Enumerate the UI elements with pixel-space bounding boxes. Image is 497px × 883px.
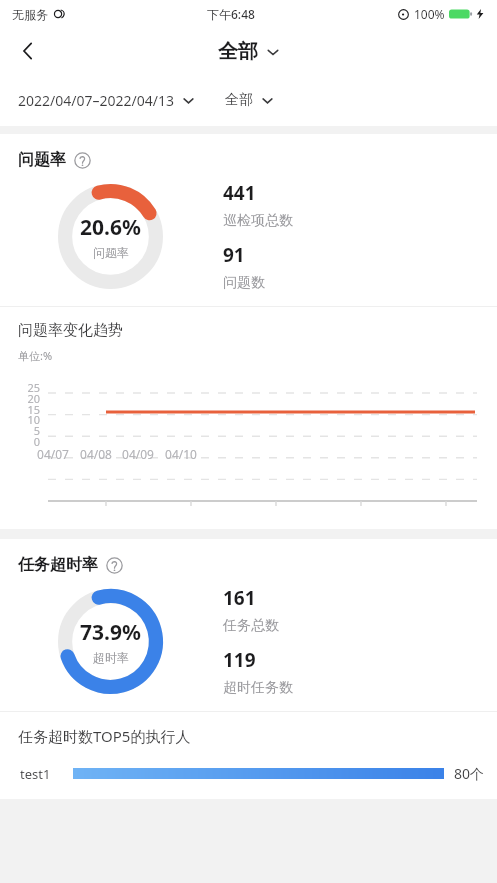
staticText: 73.9% [80,618,141,647]
staticText: 下午6:48 [207,6,255,22]
staticText: 80个 [454,764,485,783]
staticText: 问题率 [93,245,129,260]
button[interactable]: 全部 [225,91,274,109]
staticText: 100% [414,6,445,22]
staticText: 问题数 [223,274,265,292]
staticText: 问题率变化趋势 [18,321,123,340]
staticText: 问题率 [18,150,66,170]
staticText: 2022/04/07–2022/04/13 [18,91,174,110]
staticText: 全部 [218,39,258,64]
staticText: 04/09 [117,446,159,462]
staticText: 20 [8,391,40,406]
button[interactable]: 全部 [218,39,280,64]
staticText: 全部 [225,91,253,109]
button[interactable]: Help [106,557,123,574]
button[interactable]: Back [6,29,50,73]
staticText: 91 [223,242,245,268]
staticText: 04/10 [160,446,202,462]
staticText: 04/08 [75,446,117,462]
staticText: 04/07 [32,446,74,462]
button[interactable]: 2022/04/07–2022/04/13 [18,91,195,110]
staticText: 119 [223,647,256,673]
staticText: 任务超时数TOP5的执行人 [18,726,191,746]
staticText: 巡检项总数 [223,212,293,230]
staticText: 20.6% [80,213,141,242]
staticText: 25 [8,380,40,395]
staticText: 441 [223,180,256,206]
staticText: 161 [223,585,256,611]
staticText: 超时任务数 [223,679,293,697]
button[interactable]: Help [74,152,91,169]
staticText: 5 [8,423,40,438]
staticText: 0 [8,434,40,449]
staticText: 无服务 [12,7,48,22]
staticText: 单位:% [18,348,53,363]
staticText: 10 [8,412,40,427]
staticText: 15 [8,402,40,417]
staticText: 任务超时率 [18,555,98,575]
staticText: test1 [20,765,51,783]
staticText: 超时率 [93,650,129,665]
staticText: 任务总数 [223,617,279,635]
